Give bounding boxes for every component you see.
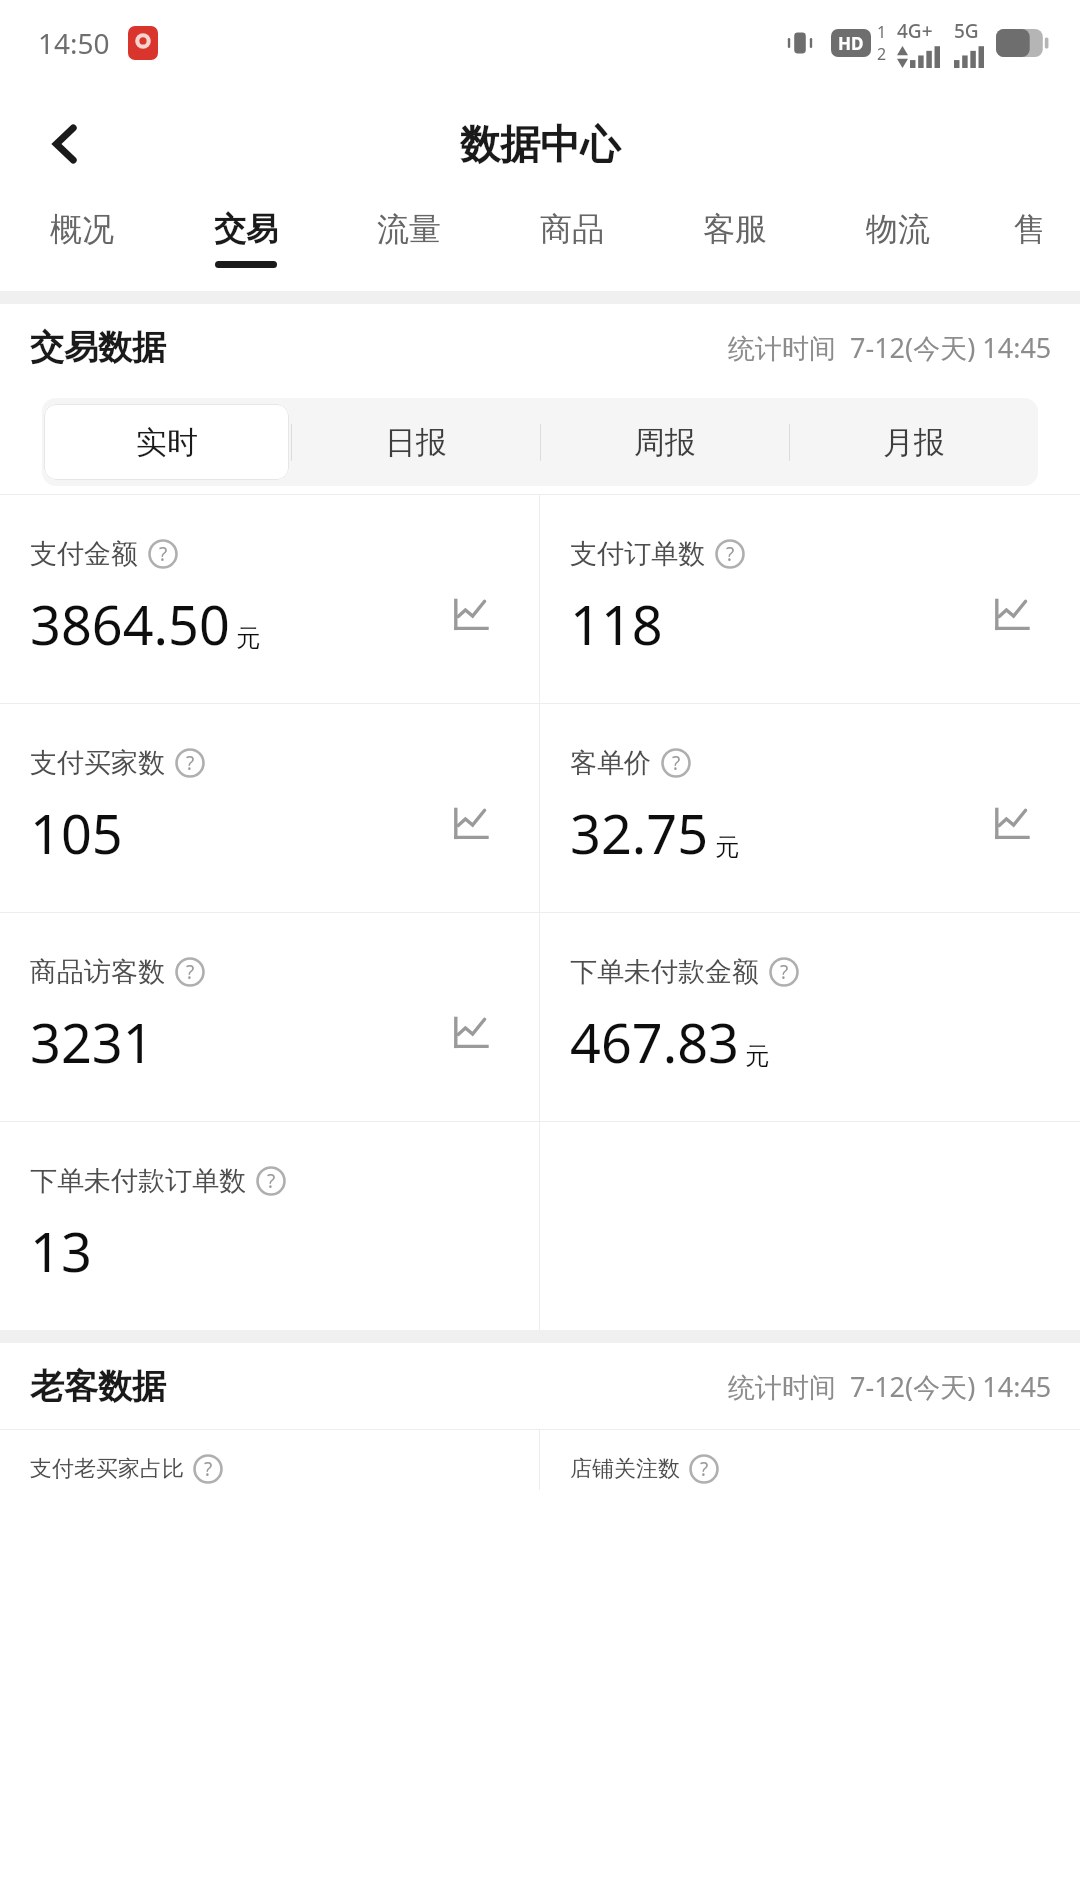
staticText: 467.83	[570, 1005, 739, 1079]
staticText: 3231	[30, 1005, 154, 1079]
staticText: 交易	[214, 209, 278, 249]
staticText: ?	[159, 541, 168, 567]
button[interactable]: 售	[979, 201, 1080, 291]
staticText: 元	[715, 832, 739, 862]
button[interactable]: Help	[689, 1454, 719, 1484]
staticText: 统计时间 7-12(今天) 14:45	[728, 1368, 1052, 1405]
staticText: 13	[30, 1214, 92, 1288]
button[interactable]: Help	[661, 748, 691, 778]
button[interactable]: 客单价	[540, 704, 1080, 912]
staticText: ?	[726, 541, 735, 567]
staticText: 商品	[540, 209, 604, 249]
staticText: 月报	[883, 423, 945, 462]
staticText: 下单未付款订单数	[30, 1164, 246, 1198]
button[interactable]: 支付买家数	[0, 704, 539, 912]
staticText: ?	[204, 1456, 213, 1482]
staticText: ?	[700, 1456, 709, 1482]
staticText: 流量	[377, 209, 441, 249]
staticText: 数据中心	[460, 119, 620, 169]
button[interactable]: Help	[769, 957, 799, 987]
button[interactable]: 商品访客数	[0, 913, 539, 1121]
staticText: 客单价	[570, 746, 651, 780]
staticText: 概况	[50, 209, 114, 249]
button[interactable]: 概况	[0, 201, 164, 291]
staticText: 老客数据	[30, 1365, 166, 1408]
button[interactable]: Help	[715, 539, 745, 569]
staticText: 店铺关注数	[570, 1455, 680, 1483]
button[interactable]: Back	[24, 102, 108, 186]
staticText: 32.75	[570, 796, 709, 870]
staticText: 1	[877, 21, 887, 43]
button[interactable]: Trend chart	[447, 1008, 495, 1056]
staticText: 元	[745, 1041, 769, 1071]
button[interactable]: 物流	[816, 201, 979, 291]
button[interactable]: Help	[148, 539, 178, 569]
staticText: 周报	[634, 423, 696, 462]
button[interactable]: 交易	[164, 201, 327, 291]
staticText: 元	[236, 623, 260, 653]
button[interactable]: 商品	[490, 201, 653, 291]
staticText: ?	[186, 750, 195, 776]
staticText: 商品访客数	[30, 955, 165, 989]
button[interactable]: 客服	[653, 201, 816, 291]
button[interactable]: 实时	[42, 398, 291, 486]
button[interactable]: 月报	[789, 398, 1038, 486]
staticText: 统计时间 7-12(今天) 14:45	[728, 329, 1052, 366]
button[interactable]: Help	[193, 1454, 223, 1484]
staticText: ?	[267, 1168, 276, 1194]
button[interactable]: Trend chart	[447, 799, 495, 847]
button[interactable]: Trend chart	[447, 590, 495, 638]
button[interactable]: 下单未付款订单数	[0, 1122, 539, 1330]
staticText: 2	[877, 43, 887, 65]
button[interactable]: 流量	[327, 201, 490, 291]
staticText: 客服	[703, 209, 767, 249]
staticText: 日报	[385, 423, 447, 462]
button[interactable]: Help	[175, 748, 205, 778]
button[interactable]: 下单未付款金额	[540, 913, 1080, 1121]
staticText: 下单未付款金额	[570, 955, 759, 989]
staticText: 支付买家数	[30, 746, 165, 780]
button[interactable]: Trend chart	[988, 799, 1036, 847]
button[interactable]: 支付金额	[0, 495, 539, 703]
staticText: HD	[838, 32, 864, 55]
button[interactable]: Help	[175, 957, 205, 987]
staticText: 物流	[866, 209, 930, 249]
staticText: 支付金额	[30, 537, 138, 571]
staticText: 实时	[136, 423, 198, 462]
staticText: 售	[1014, 209, 1046, 249]
staticText: 105	[30, 796, 123, 870]
button[interactable]: 周报	[540, 398, 789, 486]
staticText: ?	[672, 750, 681, 776]
staticText: 3864.50	[30, 587, 230, 661]
staticText: 支付老买家占比	[30, 1455, 184, 1483]
staticText: 交易数据	[30, 326, 166, 369]
button[interactable]: 日报	[291, 398, 540, 486]
staticText: 118	[570, 587, 663, 661]
button[interactable]: Help	[256, 1166, 286, 1196]
staticText: 5G	[954, 18, 979, 44]
button[interactable]: Trend chart	[988, 590, 1036, 638]
staticText: ?	[780, 959, 789, 985]
staticText: 14:50	[38, 24, 110, 62]
staticText: 4G+	[897, 18, 933, 44]
button[interactable]: 支付订单数	[540, 495, 1080, 703]
staticText: 支付订单数	[570, 537, 705, 571]
staticText: ?	[186, 959, 195, 985]
